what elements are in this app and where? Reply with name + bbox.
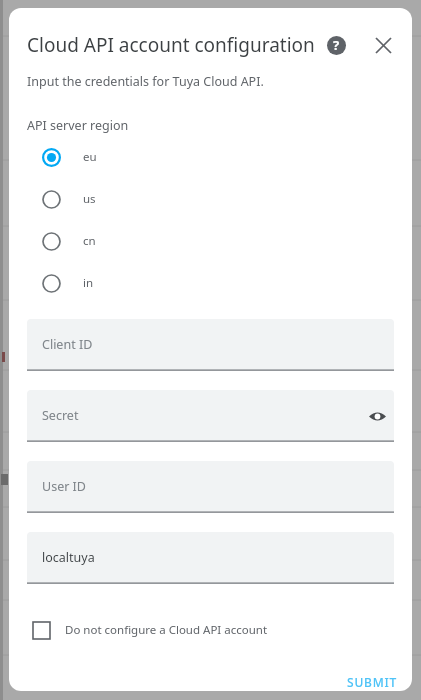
button[interactable]: localtuya	[27, 532, 394, 584]
button[interactable]: Help	[323, 32, 349, 58]
button[interactable]: eu	[33, 139, 153, 175]
staticText: Do not configure a Cloud API account	[65, 622, 268, 638]
button[interactable]: User ID	[27, 461, 394, 513]
staticText: SUBMIT	[347, 674, 398, 690]
staticText: Secret	[42, 407, 79, 424]
button[interactable]: Client ID	[27, 319, 394, 371]
staticText: localtuya	[42, 549, 95, 566]
staticText: Cloud API account configuration	[27, 32, 315, 58]
staticText: eu	[83, 149, 97, 165]
staticText: API server region	[27, 117, 129, 134]
staticText: User ID	[42, 478, 86, 495]
button[interactable]: in	[33, 265, 153, 301]
staticText: Client ID	[42, 336, 93, 353]
staticText: Input the credentials for Tuya Cloud API…	[27, 73, 264, 90]
button[interactable]: SUBMIT	[341, 665, 403, 691]
staticText: cn	[83, 233, 96, 249]
button[interactable]: Do not configure a Cloud API account	[33, 611, 293, 649]
staticText: ?	[333, 36, 340, 54]
staticText: in	[83, 275, 94, 291]
button[interactable]: Show secret	[360, 399, 394, 433]
button[interactable]: Secret	[27, 390, 394, 442]
button[interactable]: cn	[33, 223, 153, 259]
button[interactable]: us	[33, 181, 153, 217]
button[interactable]: Close	[369, 30, 398, 60]
staticText: us	[83, 191, 96, 207]
